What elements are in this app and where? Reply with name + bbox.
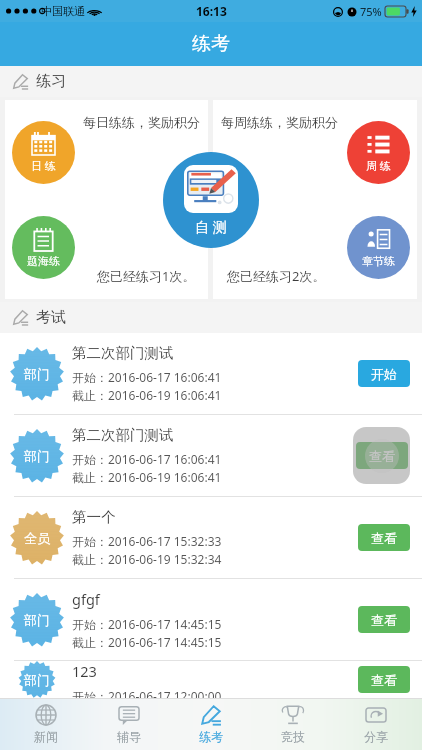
staticText: 查看 bbox=[371, 672, 397, 688]
staticText: 截止：2016-06-19 16:06:41 bbox=[72, 387, 222, 403]
button[interactable]: 查看 bbox=[356, 442, 408, 469]
staticText: 部门 bbox=[24, 448, 50, 464]
staticText: 开始：2016-06-17 14:45:15 bbox=[72, 616, 222, 632]
staticText: 题海练 bbox=[27, 254, 60, 268]
staticText: 查看 bbox=[371, 612, 397, 628]
button[interactable]: 查看 bbox=[358, 524, 410, 551]
staticText: 截止：2016-06-19 16:06:41 bbox=[72, 469, 222, 485]
staticText: 考试 bbox=[36, 308, 66, 327]
staticText: 开始：2016-06-17 16:06:41 bbox=[72, 451, 222, 467]
staticText: 第一个 bbox=[72, 508, 116, 526]
staticText: 75% bbox=[360, 4, 382, 19]
button[interactable]: 查看 bbox=[358, 666, 410, 693]
staticText: 16:13 bbox=[196, 3, 227, 19]
staticText: 自 测 bbox=[195, 217, 227, 236]
staticText: gfgf bbox=[72, 589, 100, 609]
staticText: 第二次部门测试 bbox=[72, 344, 174, 362]
button[interactable]: 辅导 bbox=[93, 698, 165, 750]
button[interactable]: 全员 bbox=[0, 497, 422, 579]
staticText: 周 练 bbox=[366, 158, 391, 173]
staticText: 123 bbox=[72, 661, 97, 681]
staticText: 部门 bbox=[24, 612, 50, 628]
staticText: 分享 bbox=[364, 729, 388, 744]
button[interactable]: 部门 bbox=[0, 579, 422, 661]
staticText: 新闻 bbox=[34, 729, 58, 744]
staticText: 每日练练，奖励积分 bbox=[83, 114, 200, 130]
button[interactable]: 分享 bbox=[340, 698, 412, 750]
staticText: 截止：2016-06-17 14:45:15 bbox=[72, 634, 222, 650]
button[interactable]: 部门 bbox=[0, 415, 422, 497]
staticText: 查看 bbox=[371, 530, 397, 546]
staticText: 部门 bbox=[24, 366, 50, 382]
button[interactable]: 日 练 bbox=[12, 121, 75, 184]
button[interactable]: 题海练 bbox=[12, 216, 75, 279]
staticText: 开始：2016-06-17 12:00:00 bbox=[72, 688, 222, 698]
button[interactable]: 新闻 bbox=[10, 698, 82, 750]
button[interactable]: 部门 bbox=[0, 333, 422, 415]
staticText: 查看 bbox=[369, 448, 395, 464]
staticText: 练习 bbox=[36, 72, 66, 91]
staticText: 竞技 bbox=[281, 729, 305, 744]
staticText: 开始：2016-06-17 16:06:41 bbox=[72, 369, 222, 385]
button[interactable]: 部门 bbox=[0, 661, 422, 698]
staticText: 开始 bbox=[371, 366, 397, 382]
staticText: 开始：2016-06-17 15:32:33 bbox=[72, 533, 222, 549]
staticText: 练考 bbox=[199, 729, 223, 744]
staticText: 部门 bbox=[24, 672, 50, 688]
staticText: 第二次部门测试 bbox=[72, 426, 174, 444]
button[interactable]: 章节练 bbox=[347, 216, 410, 279]
staticText: 日 练 bbox=[31, 158, 56, 173]
staticText: 截止：2016-06-19 15:32:34 bbox=[72, 551, 222, 567]
staticText: 辅导 bbox=[117, 729, 141, 744]
staticText: 中国联通 bbox=[41, 4, 85, 18]
button[interactable]: 自 测 bbox=[163, 152, 259, 248]
button[interactable]: 查看 bbox=[358, 606, 410, 633]
button[interactable]: 竞技 bbox=[257, 698, 329, 750]
staticText: 您已经练习2次。 bbox=[227, 267, 326, 285]
staticText: 每周练练，奖励积分 bbox=[221, 114, 338, 130]
staticText: 练考 bbox=[192, 32, 230, 56]
button[interactable]: 开始 bbox=[358, 360, 410, 387]
button[interactable]: 周 练 bbox=[347, 121, 410, 184]
staticText: 您已经练习1次。 bbox=[97, 267, 196, 285]
button[interactable]: 练考 bbox=[175, 698, 247, 750]
staticText: 全员 bbox=[24, 530, 50, 546]
staticText: 章节练 bbox=[362, 254, 395, 268]
